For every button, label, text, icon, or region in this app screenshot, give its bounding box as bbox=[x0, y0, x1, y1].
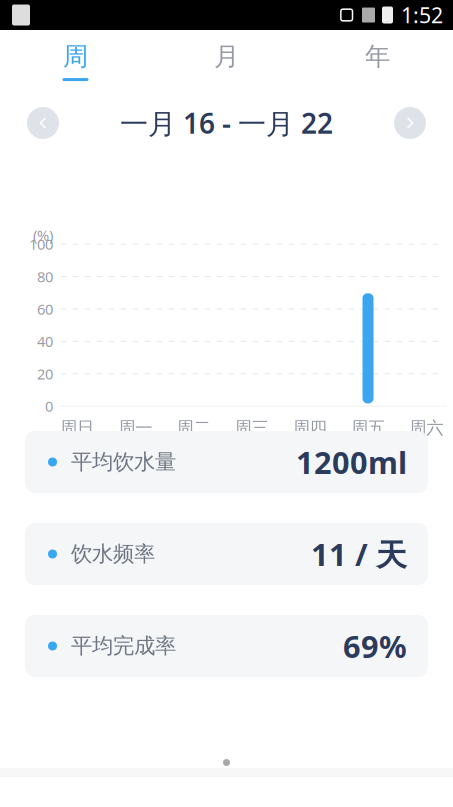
staticText: 周 bbox=[63, 41, 88, 72]
staticText: 60 bbox=[37, 299, 53, 319]
staticText: 周六 bbox=[409, 417, 443, 439]
button[interactable]: 平均完成率 bbox=[25, 615, 428, 677]
button[interactable]: 饮水频率 bbox=[25, 523, 428, 585]
staticText: 月 bbox=[214, 41, 239, 72]
staticText: 平均饮水量 bbox=[71, 449, 176, 475]
button[interactable]: 周 bbox=[0, 33, 151, 89]
staticText: 周三 bbox=[235, 417, 269, 439]
staticText: 饮水频率 bbox=[71, 541, 155, 567]
staticText: 周五 bbox=[351, 417, 385, 439]
staticText: 周一 bbox=[118, 417, 152, 439]
staticText: 周日 bbox=[60, 417, 94, 439]
button[interactable]: 年 bbox=[302, 33, 453, 89]
button[interactable]: 月 bbox=[151, 33, 302, 89]
staticText: 平均完成率 bbox=[71, 633, 176, 659]
staticText: 周二 bbox=[176, 417, 210, 439]
button[interactable]: 平均饮水量 bbox=[25, 431, 428, 493]
staticText: 11 / 天 bbox=[311, 534, 407, 574]
button[interactable]: 上一周 bbox=[16, 96, 70, 150]
button[interactable]: 下一周 bbox=[383, 96, 437, 150]
staticText: 1200ml bbox=[296, 442, 407, 482]
staticText: 一月 16 - 一月 22 bbox=[120, 104, 333, 142]
staticText: 1:52 bbox=[401, 1, 443, 29]
staticText: 0 bbox=[45, 396, 53, 416]
staticText: 69% bbox=[343, 626, 407, 666]
staticText: 100 bbox=[29, 234, 53, 254]
staticText: 周四 bbox=[293, 417, 327, 439]
staticText: 80 bbox=[37, 267, 53, 286]
staticText: (%) bbox=[33, 225, 53, 245]
staticText: 40 bbox=[37, 332, 53, 351]
staticText: 年 bbox=[365, 41, 390, 72]
staticText: 20 bbox=[37, 364, 53, 383]
